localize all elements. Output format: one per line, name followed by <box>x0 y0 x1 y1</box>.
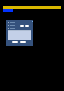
button[interactable]: Cancel <box>12 41 18 43</box>
button[interactable] <box>8 24 17 26</box>
button[interactable] <box>8 21 17 23</box>
button[interactable]: Close <box>31 20 33 22</box>
button[interactable] <box>8 27 17 29</box>
button[interactable]: Option one <box>20 25 24 27</box>
button[interactable]: Confirm <box>20 41 26 43</box>
button[interactable]: Option two <box>25 25 29 27</box>
